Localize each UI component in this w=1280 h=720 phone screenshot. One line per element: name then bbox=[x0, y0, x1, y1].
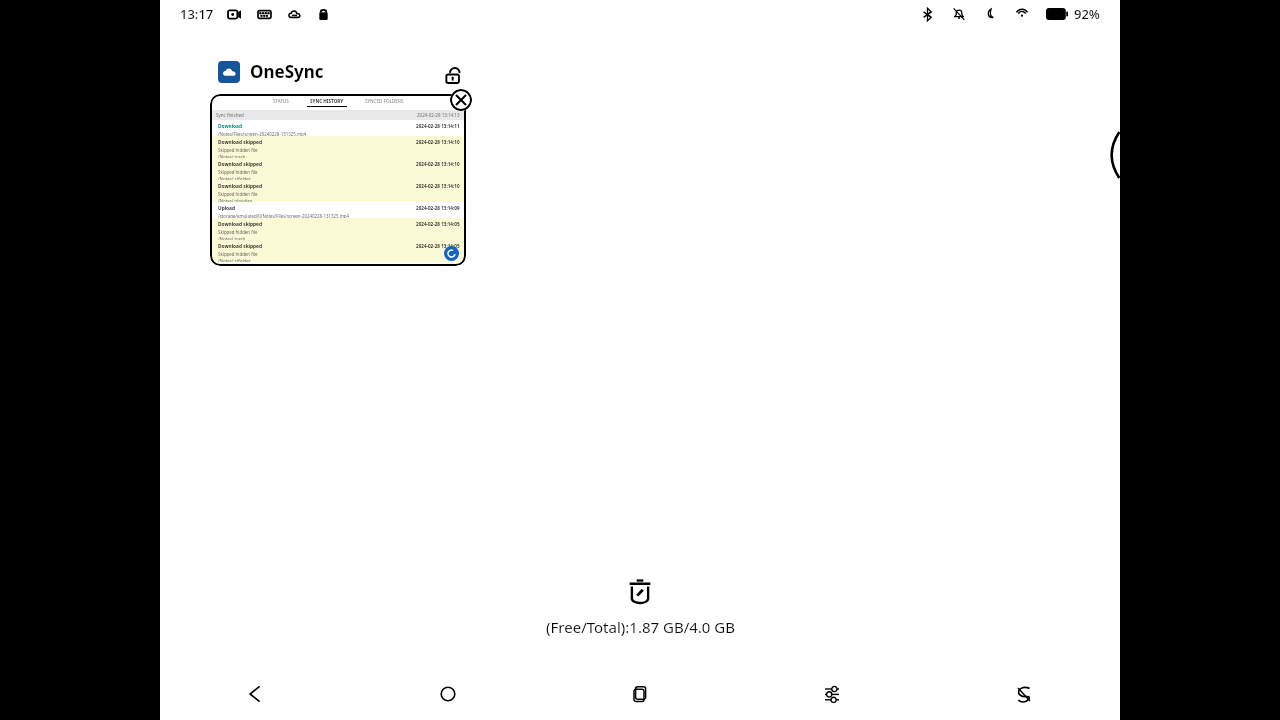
staticText: SYNC HISTORY bbox=[310, 98, 344, 104]
staticText: 13:17 bbox=[180, 5, 214, 23]
button[interactable]: Quick settings bbox=[736, 672, 928, 716]
button[interactable]: Download skipped bbox=[210, 240, 466, 262]
staticText: 2024-02-28 13:14:11 bbox=[416, 123, 460, 129]
button[interactable]: SYNC HISTORY bbox=[307, 98, 347, 107]
staticText: Skipped hidden file bbox=[218, 147, 258, 153]
staticText: 2024-02-28 13:14:10 bbox=[416, 161, 460, 167]
button[interactable]: Unlock bbox=[438, 60, 468, 90]
button[interactable]: STATUS bbox=[273, 98, 289, 107]
button[interactable]: Sync now bbox=[444, 246, 459, 261]
staticText: SYNCED FOLDERS bbox=[365, 98, 404, 104]
button[interactable]: Download skipped bbox=[210, 136, 466, 158]
staticText: Download skipped bbox=[218, 221, 262, 228]
staticText: /storage/emulated/0/Notes/Files/screen-2… bbox=[218, 213, 350, 218]
staticText: 92% bbox=[1074, 5, 1100, 23]
staticText: 2024-02-28 13:14:10 bbox=[416, 183, 460, 189]
button[interactable]: Home bbox=[352, 672, 544, 716]
staticText: Skipped hidden file bbox=[218, 229, 258, 235]
staticText: Download skipped bbox=[218, 139, 262, 146]
staticText: STATUS bbox=[273, 98, 289, 104]
button[interactable]: Recents bbox=[544, 672, 736, 716]
staticText: Download bbox=[218, 123, 242, 130]
staticText: Sync finished bbox=[216, 112, 244, 118]
staticText: Skipped hidden file bbox=[218, 251, 258, 257]
staticText: 2024-02-28 13:14:10 bbox=[416, 139, 460, 145]
button[interactable]: Screenshot bbox=[928, 672, 1120, 716]
staticText: 2024-02-28 13:14:05 bbox=[416, 221, 460, 227]
button[interactable]: Upload bbox=[210, 202, 466, 218]
button[interactable]: Download skipped bbox=[210, 158, 466, 180]
button[interactable]: Back bbox=[160, 672, 352, 716]
staticText: Download skipped bbox=[218, 161, 262, 168]
staticText: OneSync bbox=[250, 60, 324, 83]
staticText: Download skipped bbox=[218, 183, 262, 190]
staticText: 2024-02-28 13:14:05 bbox=[416, 243, 460, 249]
staticText: /Notes/Files/screen-20240228-131325.mp4 bbox=[218, 131, 307, 136]
staticText: (Free/Total):1.87 GB/4.0 GB bbox=[546, 617, 735, 637]
staticText: Download skipped bbox=[218, 243, 262, 250]
staticText: Skipped hidden file bbox=[218, 191, 258, 197]
button[interactable]: Close bbox=[450, 89, 472, 111]
staticText: /Notes/.stfolder bbox=[218, 258, 251, 262]
button[interactable]: Download bbox=[210, 120, 466, 136]
staticText: Upload bbox=[218, 205, 235, 212]
staticText: /Notes/.trash bbox=[218, 154, 246, 158]
staticText: /Notes/.trash bbox=[218, 236, 246, 240]
staticText: /Notes/.stfolder bbox=[218, 176, 251, 180]
staticText: 2024-02-28 13:14:09 bbox=[416, 205, 460, 211]
button[interactable]: Download skipped bbox=[210, 218, 466, 240]
staticText: /Notes/.obsidian bbox=[218, 198, 253, 202]
button[interactable]: SYNCED FOLDERS bbox=[365, 98, 404, 107]
staticText: Skipped hidden file bbox=[218, 169, 258, 175]
button[interactable]: Download skipped bbox=[210, 180, 466, 202]
staticText: 2024-02-28 13:14:13 bbox=[417, 112, 460, 118]
